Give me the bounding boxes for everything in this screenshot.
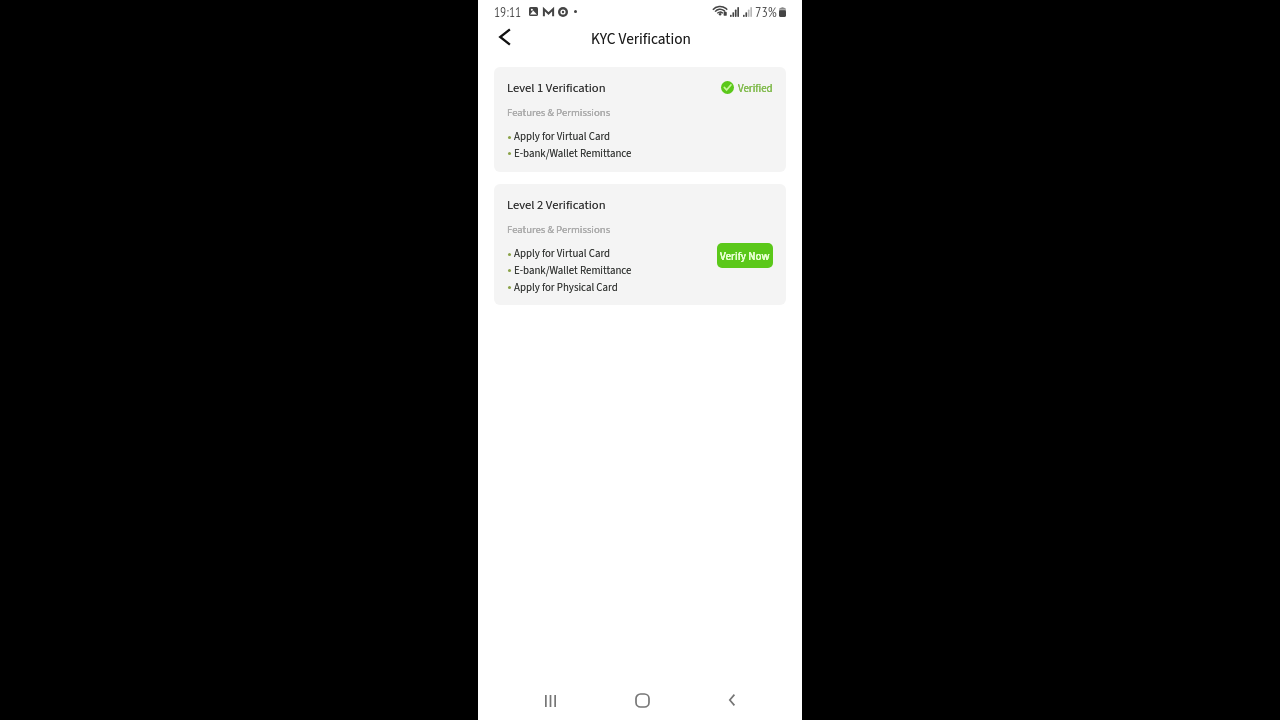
staticText: 19:11 xyxy=(494,3,522,20)
staticText: Verified xyxy=(738,81,773,97)
staticText: Level 2 Verification xyxy=(507,196,606,214)
staticText: KYC Verification xyxy=(591,28,691,50)
staticText: Apply for Virtual Card xyxy=(514,246,611,261)
staticText: Features & Permissions xyxy=(507,105,611,120)
staticText: E-bank/Wallet Remittance xyxy=(514,263,632,278)
staticText: 73% xyxy=(755,3,777,21)
staticText: E-bank/Wallet Remittance xyxy=(514,146,632,161)
button[interactable]: Level 2 Verification xyxy=(494,184,786,305)
staticText: Features & Permissions xyxy=(507,105,611,120)
staticText: Apply for Virtual Card xyxy=(514,246,611,261)
staticText: E-bank/Wallet Remittance xyxy=(514,263,632,278)
staticText: Verify Now xyxy=(720,249,770,265)
staticText: Features & Permissions xyxy=(507,222,611,237)
staticText: Features & Permissions xyxy=(507,222,611,237)
staticText: Apply for Virtual Card xyxy=(514,129,611,144)
staticText: Apply for Virtual Card xyxy=(514,129,611,144)
button[interactable]: Home xyxy=(623,681,661,719)
button[interactable]: Verify Now xyxy=(717,243,773,268)
button[interactable]: Verified xyxy=(719,79,773,96)
staticText: Level 1 Verification xyxy=(507,79,606,97)
button[interactable]: Back xyxy=(713,681,751,719)
staticText: E-bank/Wallet Remittance xyxy=(514,146,632,161)
staticText: Level 1 Verification xyxy=(507,79,606,97)
button[interactable]: Level 1 Verification xyxy=(494,67,786,172)
staticText: KYC Verification xyxy=(591,28,691,50)
staticText: Apply for Physical Card xyxy=(514,280,618,295)
button[interactable]: Recent apps xyxy=(531,682,569,720)
staticText: Verify Now xyxy=(720,249,770,265)
staticText: Level 2 Verification xyxy=(507,196,606,214)
button[interactable]: Back xyxy=(487,19,522,54)
staticText: Apply for Physical Card xyxy=(514,280,618,295)
staticText: Verified xyxy=(738,81,773,97)
